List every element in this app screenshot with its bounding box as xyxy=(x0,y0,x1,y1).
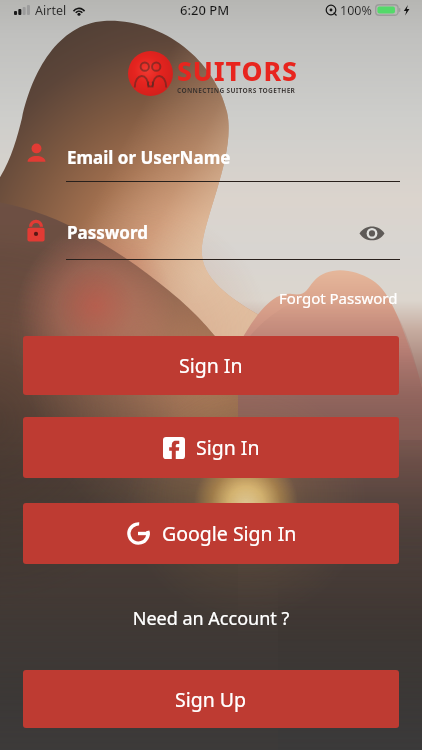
staticText: Sign Up xyxy=(175,686,247,713)
button[interactable]: Forgot Password xyxy=(279,288,398,308)
button[interactable]: Sign In xyxy=(23,417,399,478)
staticText: SUITORS xyxy=(177,53,298,89)
staticText: Airtel xyxy=(35,2,67,19)
staticText: Sign In xyxy=(196,434,260,461)
button[interactable]: Google Sign In xyxy=(23,503,399,564)
button[interactable]: Show password xyxy=(359,223,385,243)
staticText: CONNECTING SUITORS TOGETHER xyxy=(177,86,296,95)
staticText: Password xyxy=(67,221,148,244)
staticText: 6:20 PM xyxy=(180,1,230,19)
staticText: Google Sign In xyxy=(162,520,297,547)
staticText: Email or UserName xyxy=(67,146,231,169)
staticText: Need an Account ? xyxy=(0,606,422,631)
button[interactable]: Sign In xyxy=(23,336,399,395)
staticText: 100% xyxy=(340,2,372,19)
button[interactable]: Sign Up xyxy=(23,670,399,728)
staticText: Sign In xyxy=(179,352,243,379)
